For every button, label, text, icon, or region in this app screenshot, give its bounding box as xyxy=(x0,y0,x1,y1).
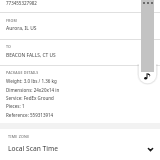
staticText: TO xyxy=(6,44,12,49)
staticText: Pieces: 1 xyxy=(6,103,25,109)
staticText: Service: FedEx Ground xyxy=(6,95,54,101)
staticText: PACKAGE DETAILS xyxy=(6,70,39,75)
staticText: Aurora, IL US xyxy=(6,25,37,32)
staticText: Reference: 559313914 xyxy=(6,112,54,118)
staticText: BEACON FALLS, CT US xyxy=(6,52,56,59)
button[interactable]: Local Scan Time xyxy=(0,141,160,160)
staticText: 773455327982 xyxy=(6,0,37,6)
staticText: Weight: 3.0 lbs / 1.36 kg xyxy=(6,78,57,84)
staticText: Local Scan Time xyxy=(8,144,59,153)
staticText: TIME ZONE xyxy=(8,134,30,139)
staticText: Dimensions: 24x20x14 in xyxy=(6,87,60,93)
button[interactable]: Sound xyxy=(137,64,158,85)
staticText: FROM xyxy=(6,18,17,23)
